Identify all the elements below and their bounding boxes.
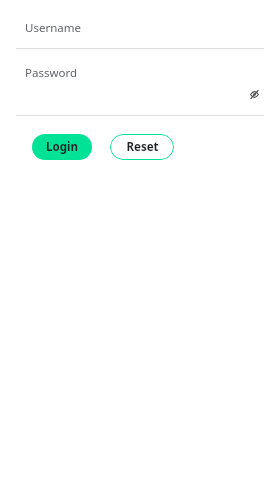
staticText: Password: [25, 65, 78, 81]
button[interactable]: Login: [32, 134, 92, 160]
staticText: Reset: [126, 139, 159, 155]
button[interactable]: Reset: [110, 134, 174, 160]
button[interactable]: Username: [0, 0, 280, 48]
staticText: Login: [46, 139, 78, 155]
button[interactable]: Toggle password visibility: [246, 86, 262, 102]
staticText: Username: [25, 20, 81, 36]
button[interactable]: Password: [0, 60, 280, 115]
